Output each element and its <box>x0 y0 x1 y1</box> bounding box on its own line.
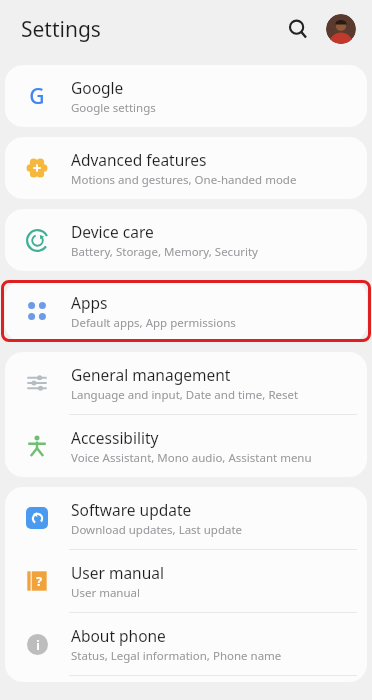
button[interactable]: Accessibility <box>5 415 367 477</box>
button[interactable]: i <box>5 613 367 675</box>
staticText: Apps <box>71 292 108 313</box>
staticText: i <box>36 637 40 653</box>
button[interactable]: Apps <box>5 280 367 342</box>
staticText: Voice Assistant, Mono audio, Assistant m… <box>71 450 312 466</box>
button[interactable]: G <box>5 65 367 127</box>
staticText: User manual <box>71 585 140 601</box>
staticText: Battery, Storage, Memory, Security <box>71 244 258 260</box>
button[interactable]: General management <box>5 352 367 414</box>
staticText: Motions and gestures, One-handed mode <box>71 172 297 188</box>
staticText: Google settings <box>71 100 156 116</box>
staticText: General management <box>71 364 231 385</box>
staticText: Device care <box>71 221 154 242</box>
staticText: Software update <box>71 499 192 520</box>
staticText: Advanced features <box>71 149 207 170</box>
button[interactable]: Advanced features <box>5 137 367 199</box>
staticText: Accessibility <box>71 427 159 448</box>
staticText: ? <box>36 573 42 589</box>
staticText: Download updates, Last update <box>71 522 243 538</box>
button[interactable]: Device care <box>5 209 367 271</box>
staticText: About phone <box>71 625 166 646</box>
button[interactable]: ? <box>5 550 367 612</box>
button[interactable]: Software update <box>5 487 367 549</box>
staticText: Language and input, Date and time, Reset <box>71 387 299 403</box>
staticText: Google <box>71 77 124 98</box>
button[interactable]: Account profile <box>326 14 356 44</box>
staticText: G <box>29 82 45 110</box>
staticText: Settings <box>21 15 101 44</box>
staticText: User manual <box>71 562 164 583</box>
staticText: Status, Legal information, Phone name <box>71 648 282 664</box>
button[interactable]: Search <box>280 11 316 47</box>
staticText: Default apps, App permissions <box>71 315 236 331</box>
